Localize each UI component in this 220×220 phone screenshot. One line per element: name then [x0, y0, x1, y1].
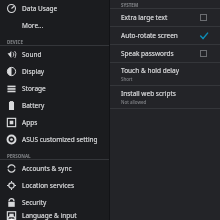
- staticText: SYSTEM: [121, 2, 139, 8]
- staticText: Language & input: [22, 211, 77, 220]
- button[interactable]: ASUS customized setting: [0, 131, 109, 148]
- button[interactable]: Apps: [0, 114, 109, 131]
- staticText: Sound: [22, 50, 42, 59]
- staticText: More...: [22, 21, 44, 30]
- staticText: Extra large text: [121, 13, 168, 22]
- button[interactable]: Data Usage: [0, 0, 109, 17]
- staticText: Apps: [22, 118, 38, 127]
- button[interactable]: Extra large text: [110, 9, 220, 26]
- staticText: Accounts & sync: [22, 164, 72, 173]
- button[interactable]: More...: [0, 17, 109, 34]
- staticText: Not allowed: [121, 99, 147, 105]
- button[interactable]: Language & input: [0, 211, 109, 220]
- button[interactable]: Battery: [0, 97, 109, 114]
- staticText: Short: [121, 76, 133, 82]
- staticText: Display: [22, 67, 45, 76]
- staticText: DEVICE: [7, 39, 23, 45]
- button[interactable]: Accounts & sync: [0, 160, 109, 177]
- staticText: Battery: [22, 101, 45, 110]
- staticText: Location services: [22, 181, 75, 190]
- staticText: ASUS customized setting: [22, 135, 98, 144]
- button[interactable]: Display: [0, 63, 109, 80]
- staticText: Auto-rotate screen: [121, 31, 178, 40]
- button[interactable]: Touch & hold delay: [110, 63, 220, 85]
- button[interactable]: Speak passwords: [110, 45, 220, 62]
- button[interactable]: Location services: [0, 177, 109, 194]
- button[interactable]: Auto-rotate screen: [110, 27, 220, 44]
- button[interactable]: Storage: [0, 80, 109, 97]
- button[interactable]: Install web scripts: [110, 86, 220, 108]
- staticText: Touch & hold delay: [121, 66, 179, 75]
- staticText: PERSONAL: [7, 153, 31, 159]
- staticText: Data Usage: [22, 4, 58, 13]
- button[interactable]: Security: [0, 194, 109, 211]
- staticText: Security: [22, 198, 47, 207]
- button[interactable]: Sound: [0, 46, 109, 63]
- staticText: Install web scripts: [121, 89, 176, 98]
- staticText: Speak passwords: [121, 49, 174, 58]
- staticText: Storage: [22, 84, 46, 93]
